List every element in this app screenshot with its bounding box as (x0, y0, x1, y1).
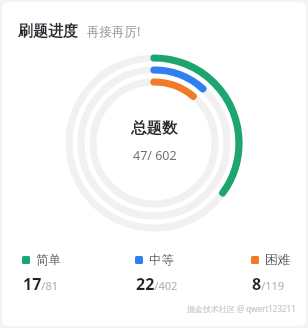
staticText: 总题数 (131, 118, 178, 138)
staticText: 中等 (149, 252, 174, 268)
staticText: 刷题进度 (18, 22, 78, 41)
staticText: 掘金技术社区 @ qwert123211 (187, 303, 296, 314)
staticText: 再接再厉! (87, 23, 141, 40)
staticText: 17/81 (23, 273, 58, 295)
staticText: 47/ 602 (133, 147, 177, 164)
staticText: 22/402 (136, 273, 178, 295)
button[interactable]: 中等 (133, 250, 180, 297)
staticText: 8/119 (252, 273, 285, 295)
staticText: 困难 (265, 252, 290, 268)
button[interactable]: 刷题进度环形图 47/602 (65, 54, 243, 232)
button[interactable]: 简单 (20, 250, 63, 297)
staticText: 简单 (36, 252, 61, 268)
button[interactable]: 困难 (249, 250, 292, 297)
